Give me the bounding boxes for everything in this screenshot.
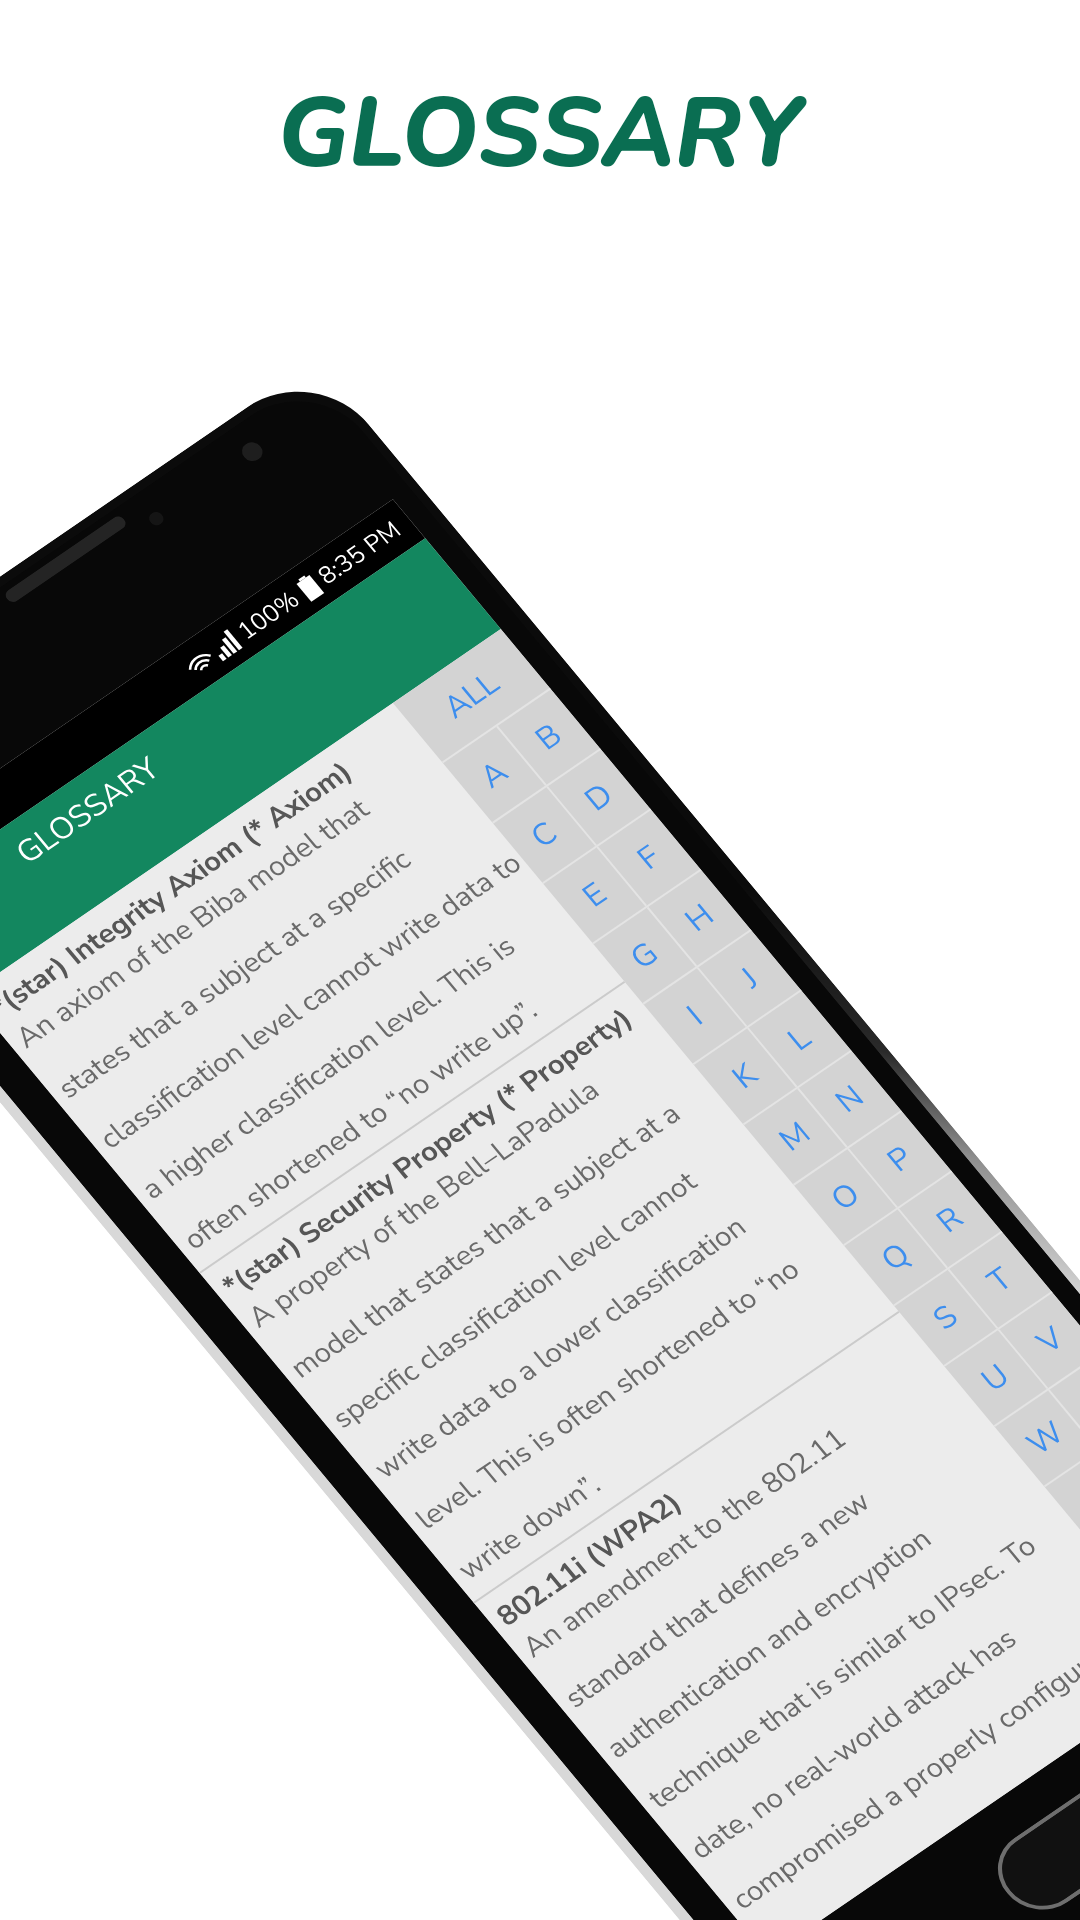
button[interactable]: E xyxy=(543,848,645,943)
button[interactable]: J xyxy=(698,931,800,1026)
staticText: F xyxy=(628,836,671,880)
button[interactable]: G xyxy=(594,908,696,1003)
staticText: L xyxy=(779,1017,821,1061)
staticText: K xyxy=(723,1054,768,1099)
staticText: M xyxy=(770,1112,821,1161)
staticText: O xyxy=(822,1173,870,1221)
staticText: W xyxy=(1018,1412,1075,1465)
staticText: 802.11i (WPA2) xyxy=(488,1484,691,1635)
staticText: R xyxy=(928,1197,973,1243)
staticText: S xyxy=(924,1296,968,1340)
staticText: *(star) Integrity Axiom (* Axiom) xyxy=(0,753,361,1026)
staticText: B xyxy=(526,714,572,760)
staticText: H xyxy=(676,894,724,942)
button[interactable]: R xyxy=(899,1172,1001,1267)
staticText: GLOSSARY xyxy=(7,748,169,874)
button[interactable]: D xyxy=(548,750,650,845)
staticText: GLOSSARY xyxy=(277,68,803,200)
button[interactable]: A xyxy=(443,727,545,822)
staticText: V xyxy=(1028,1317,1074,1364)
button[interactable]: F xyxy=(598,810,700,905)
button[interactable]: C xyxy=(493,787,595,882)
button[interactable]: 802.11i (WPA2) xyxy=(475,1312,1080,1920)
button[interactable]: *(star) Security Property (* Property) xyxy=(200,982,898,1602)
button[interactable]: *(star) Integrity Axiom (* Axiom) xyxy=(0,703,624,1272)
button[interactable]: W xyxy=(995,1391,1080,1486)
staticText: D xyxy=(576,774,623,821)
button[interactable]: B xyxy=(498,689,600,785)
button[interactable]: N xyxy=(799,1051,901,1147)
button[interactable]: H xyxy=(648,870,750,966)
staticText: G xyxy=(621,932,669,979)
button[interactable]: I xyxy=(644,968,746,1063)
staticText: 8:35 PM xyxy=(311,514,409,592)
button[interactable]: O xyxy=(794,1149,896,1244)
staticText: An axiom of the Biba model that states t… xyxy=(7,743,614,1258)
staticText: T xyxy=(978,1258,1022,1303)
staticText: *(star) Security Property (* Property) xyxy=(214,1000,641,1305)
button[interactable]: M xyxy=(744,1089,846,1184)
staticText: An amendment to the 802.11 standard that… xyxy=(514,1352,1080,1920)
staticText: Q xyxy=(872,1234,920,1281)
button[interactable]: Q xyxy=(844,1210,946,1305)
staticText: C xyxy=(522,812,567,858)
staticText: N xyxy=(826,1076,874,1123)
button[interactable]: V xyxy=(999,1293,1080,1388)
button[interactable] xyxy=(1050,1353,1080,1448)
staticText: A xyxy=(471,751,518,798)
staticText: J xyxy=(732,959,769,998)
button[interactable]: P xyxy=(849,1112,951,1207)
staticText: 100% xyxy=(230,583,307,647)
staticText: U xyxy=(972,1355,1020,1402)
button[interactable]: T xyxy=(949,1232,1051,1328)
button[interactable]: ALL xyxy=(393,629,550,762)
button[interactable]: L xyxy=(749,991,851,1086)
button[interactable]: GLOSSARY xyxy=(0,538,501,994)
staticText: P xyxy=(878,1137,923,1182)
staticText: E xyxy=(573,873,617,917)
staticText: ALL xyxy=(434,662,510,728)
button[interactable]: K xyxy=(694,1029,796,1124)
staticText: I xyxy=(678,997,713,1035)
staticText: A property of the Bell–LaPadula model th… xyxy=(239,1022,888,1588)
button[interactable]: S xyxy=(894,1270,996,1365)
button[interactable]: U xyxy=(945,1330,1047,1425)
